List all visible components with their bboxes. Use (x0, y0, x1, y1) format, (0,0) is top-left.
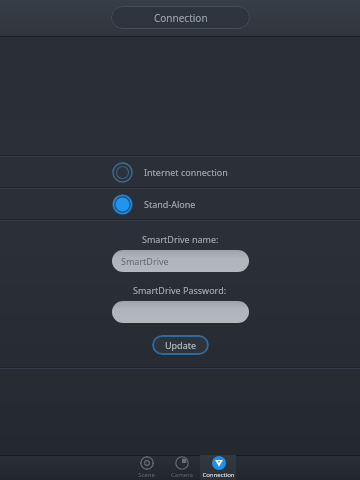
button[interactable]: Internet connection (0, 157, 360, 187)
staticText: Camera (171, 471, 193, 479)
button[interactable]: Connection (111, 6, 250, 29)
staticText: Connection (202, 471, 235, 479)
staticText: Stand-Alone (144, 198, 196, 210)
staticText: Update (165, 339, 197, 351)
staticText: Connection (154, 11, 208, 25)
staticText: SmartDrive (121, 255, 169, 267)
button[interactable]: Scene (128, 455, 164, 480)
button[interactable]: Update (152, 335, 209, 355)
staticText: SmartDrive Password: (133, 284, 227, 296)
staticText: SmartDrive name: (142, 233, 219, 245)
button[interactable] (112, 301, 249, 323)
staticText: Internet connection (144, 166, 228, 178)
button[interactable]: SmartDrive (112, 250, 249, 272)
staticText: Scene (138, 471, 155, 479)
button[interactable]: Camera (164, 455, 200, 480)
button[interactable]: Stand-Alone (0, 189, 360, 219)
button[interactable]: Connection (200, 455, 236, 480)
